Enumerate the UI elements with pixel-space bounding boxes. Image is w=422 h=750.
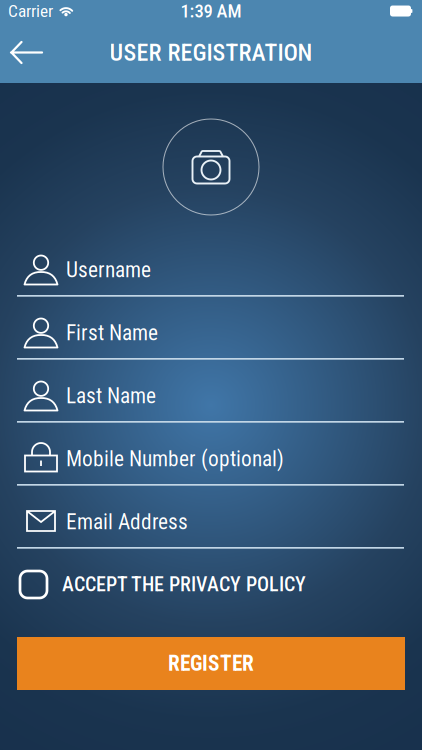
staticText: USER REGISTRATION [109,38,312,66]
button[interactable]: Add photo [163,119,259,215]
button[interactable]: Back [0,25,62,79]
button[interactable]: ACCEPT THE PRIVACY POLICY [0,571,422,598]
staticText: First Name [66,320,158,345]
staticText: Username [66,257,151,282]
staticText: Last Name [66,383,156,408]
button[interactable]: Email Address [0,486,422,549]
staticText: REGISTER [168,651,254,676]
staticText: ACCEPT THE PRIVACY POLICY [62,573,306,596]
button[interactable]: First Name [0,297,422,360]
button[interactable]: Username [0,234,422,297]
staticText: Email Address [66,509,188,534]
button[interactable]: Last Name [0,360,422,423]
staticText: Carrier [8,1,53,21]
staticText: 1:39 AM [180,0,241,22]
button[interactable]: Mobile Number (optional) [0,423,422,486]
button[interactable]: REGISTER [17,637,405,690]
staticText: Mobile Number (optional) [66,446,284,471]
